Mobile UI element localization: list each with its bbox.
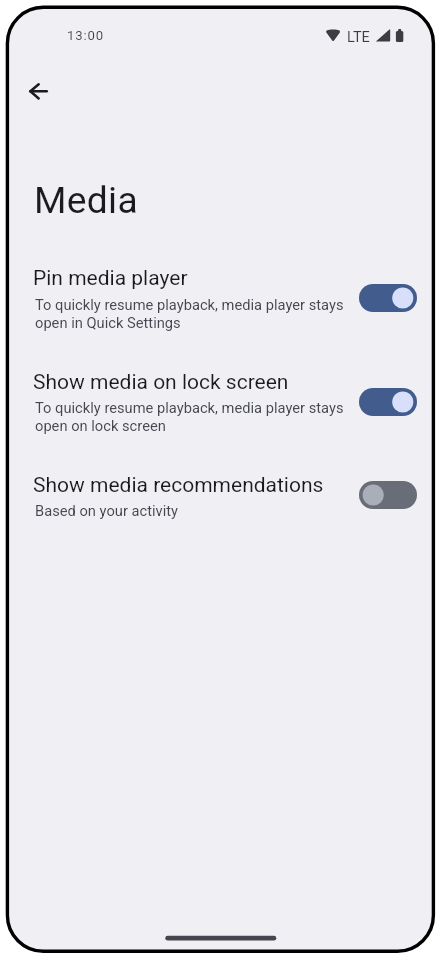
- button[interactable]: Pin media player, on: [359, 284, 417, 312]
- button[interactable]: [9, 472, 427, 524]
- staticText: open on lock screen: [35, 417, 166, 434]
- button[interactable]: Show media recommendations, off: [359, 481, 417, 509]
- staticText: Based on your activity: [35, 502, 178, 519]
- staticText: open in Quick Settings: [35, 314, 181, 331]
- button[interactable]: [9, 265, 427, 336]
- staticText: Pin media player: [33, 266, 188, 291]
- button[interactable]: Show media on lock screen, on: [359, 388, 417, 416]
- staticText: LTE: [347, 28, 370, 45]
- staticText: To quickly resume playback, media player…: [35, 399, 344, 416]
- button[interactable]: Navigate up: [16, 69, 61, 114]
- staticText: Media: [34, 178, 138, 222]
- staticText: Show media recommendations: [33, 473, 324, 498]
- staticText: 13:00: [67, 28, 105, 43]
- staticText: To quickly resume playback, media player…: [35, 296, 344, 313]
- button[interactable]: [9, 369, 427, 438]
- staticText: Show media on lock screen: [33, 370, 289, 395]
